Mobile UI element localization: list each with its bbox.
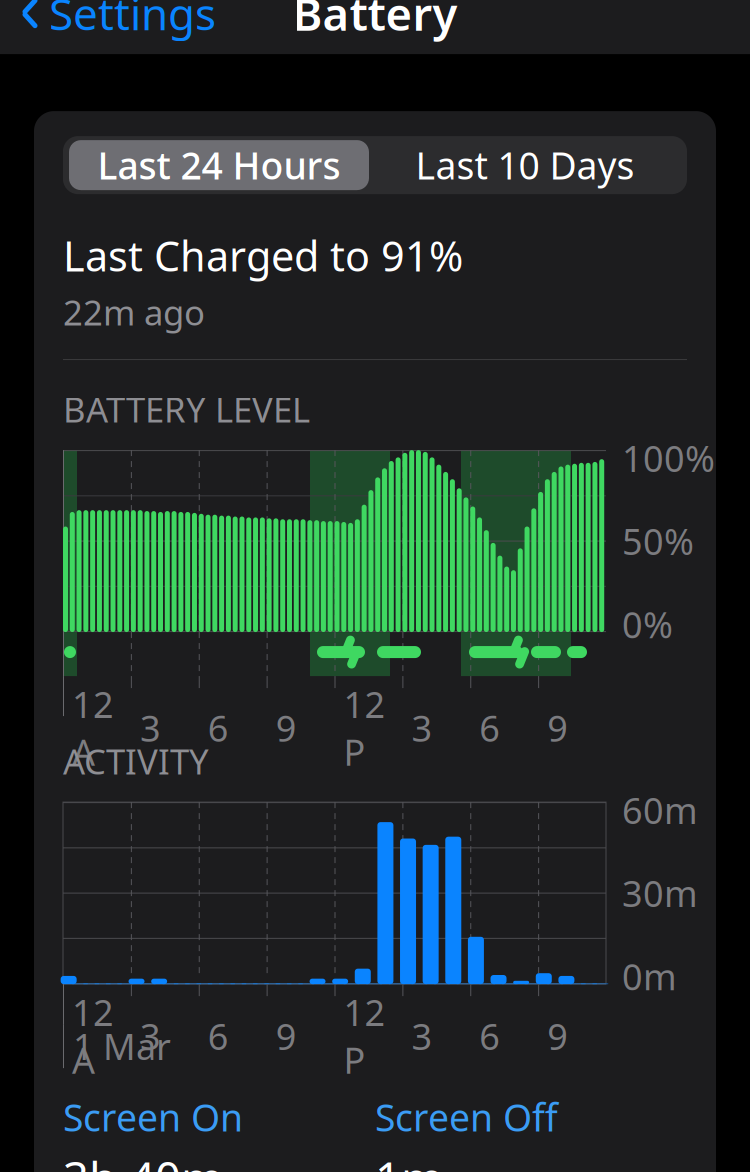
staticText: 3 xyxy=(140,1012,161,1060)
staticText: 3h 40m xyxy=(63,1148,223,1172)
staticText: 3 xyxy=(140,704,161,752)
staticText: 3 xyxy=(411,1012,432,1060)
staticText: Last Charged to 91% xyxy=(63,228,463,283)
staticText: 9 xyxy=(547,1012,568,1060)
staticText: 6 xyxy=(479,1012,500,1060)
staticText: 0m xyxy=(622,952,677,1000)
staticText: BATTERY LEVEL xyxy=(63,386,310,432)
staticText: Screen Off xyxy=(375,1092,558,1142)
staticText: 22m ago xyxy=(63,289,205,335)
staticText: 1 Mar xyxy=(73,1022,171,1070)
staticText: 60m xyxy=(622,786,698,834)
staticText: Last 24 Hours xyxy=(97,140,340,190)
staticText: Battery xyxy=(292,0,457,43)
button[interactable]: Screen On xyxy=(63,1092,243,1142)
button[interactable]: Last 10 Days xyxy=(369,140,681,190)
staticText: 12 P xyxy=(343,680,385,776)
staticText: 30m xyxy=(622,869,698,917)
staticText: 0% xyxy=(622,600,673,648)
staticText: Settings xyxy=(49,0,216,42)
staticText: 50% xyxy=(622,517,694,565)
staticText: 9 xyxy=(547,704,568,752)
staticText: Screen On xyxy=(63,1092,243,1142)
staticText: 12 P xyxy=(343,988,385,1084)
staticText: 100% xyxy=(622,434,715,482)
staticText: ACTIVITY xyxy=(63,738,209,784)
button[interactable]: Screen Off xyxy=(375,1092,558,1142)
staticText: 6 xyxy=(208,1012,229,1060)
staticText: 9 xyxy=(276,704,297,752)
staticText: 9 xyxy=(276,1012,297,1060)
staticText: Last 10 Days xyxy=(415,140,634,190)
staticText: 12 A xyxy=(72,988,114,1084)
button[interactable]: Settings xyxy=(0,0,236,54)
button[interactable]: Last 24 Hours xyxy=(69,140,369,190)
staticText: 12 A xyxy=(72,680,114,776)
staticText: 1m xyxy=(375,1148,443,1172)
staticText: 6 xyxy=(479,704,500,752)
staticText: 6 xyxy=(208,704,229,752)
staticText: 3 xyxy=(411,704,432,752)
